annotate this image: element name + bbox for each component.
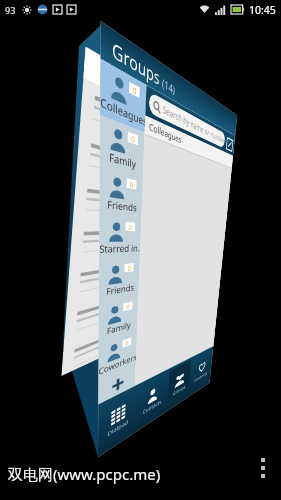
button[interactable]: Groups: [167, 359, 192, 409]
staticText: 0: [133, 84, 137, 97]
staticText: 93: [5, 4, 16, 16]
button[interactable]: 2: [99, 215, 141, 261]
staticText: 0: [127, 263, 132, 272]
staticText: Family: [109, 149, 136, 171]
staticText: Groups: [112, 34, 161, 90]
staticText: Contacts: [143, 398, 162, 416]
button[interactable]: 0: [99, 296, 138, 344]
button[interactable]: 0: [99, 258, 140, 304]
staticText: Starred in..: [99, 242, 140, 255]
staticText: Friends: [107, 197, 137, 214]
staticText: 双电网(www.pcpc.me): [8, 464, 161, 484]
staticText: 10:45: [249, 3, 276, 17]
staticText: Colleagues: [100, 93, 145, 128]
staticText: Family: [107, 319, 131, 337]
staticText: Coworkers: [98, 352, 136, 377]
staticText: Search by name or number: [162, 103, 225, 147]
button[interactable]: Contacts: [137, 372, 167, 429]
staticText: 0: [131, 133, 136, 144]
button[interactable]: Dialpad: [100, 388, 136, 453]
button[interactable]: Search by name or number: [149, 91, 225, 149]
button[interactable]: 0: [99, 166, 143, 218]
button[interactable]: Create contact: [225, 135, 234, 152]
button[interactable]: More options: [261, 458, 265, 478]
button[interactable]: Favorites: [191, 349, 212, 393]
staticText: 0: [126, 302, 131, 310]
staticText: Dialpad: [107, 418, 129, 438]
staticText: (14): [162, 74, 175, 97]
staticText: Groups: [173, 383, 186, 397]
button[interactable]: 0: [98, 332, 137, 381]
staticText: 2: [129, 222, 133, 231]
staticText: Colleagues: [149, 120, 182, 147]
staticText: 0: [130, 179, 134, 189]
button[interactable]: 0: [100, 115, 145, 177]
staticText: Favorites: [194, 370, 208, 384]
staticText: Friends: [106, 281, 134, 297]
button[interactable]: 0: [100, 59, 146, 132]
staticText: 0: [125, 338, 129, 347]
button[interactable]: Add group: [98, 365, 136, 404]
